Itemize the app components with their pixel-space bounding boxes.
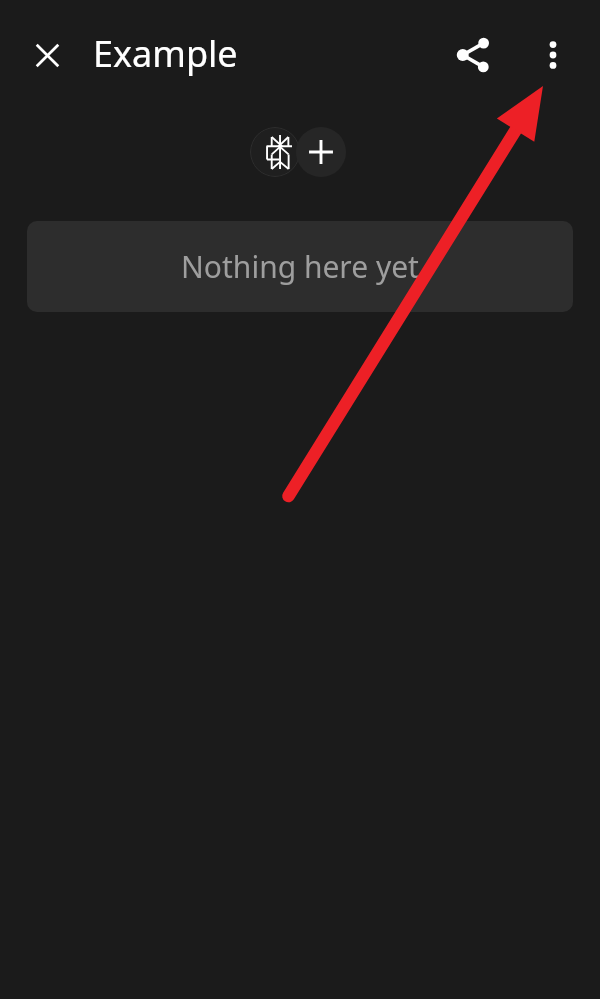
- button[interactable]: Nothing here yet: [27, 221, 573, 312]
- staticText: Example: [93, 29, 238, 78]
- staticText: Nothing here yet: [181, 246, 419, 287]
- button[interactable]: Collaborate: [250, 127, 300, 177]
- button[interactable]: Close: [20, 28, 74, 82]
- button[interactable]: Add: [296, 127, 346, 177]
- button[interactable]: Share: [446, 26, 504, 84]
- button[interactable]: More options: [524, 26, 582, 84]
